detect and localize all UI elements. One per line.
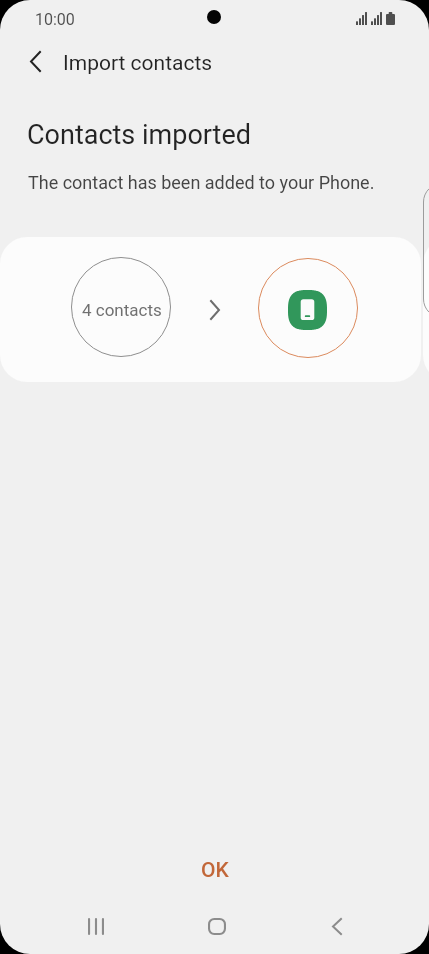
button[interactable]: Recent apps: [68, 899, 124, 954]
staticText: The contact has been added to your Phone…: [28, 172, 375, 193]
staticText: Contacts imported: [27, 119, 251, 151]
button[interactable]: OK: [153, 850, 277, 891]
button[interactable]: [423, 183, 429, 318]
button[interactable]: Back: [309, 899, 365, 954]
staticText: 10:00: [35, 10, 75, 29]
button[interactable]: Home: [189, 899, 245, 954]
button[interactable]: Navigate up: [15, 41, 55, 81]
staticText: OK: [201, 858, 229, 883]
staticText: Import contacts: [63, 51, 213, 76]
button[interactable]: 4 contacts: [0, 237, 421, 382]
staticText: 4 contacts: [82, 300, 162, 320]
